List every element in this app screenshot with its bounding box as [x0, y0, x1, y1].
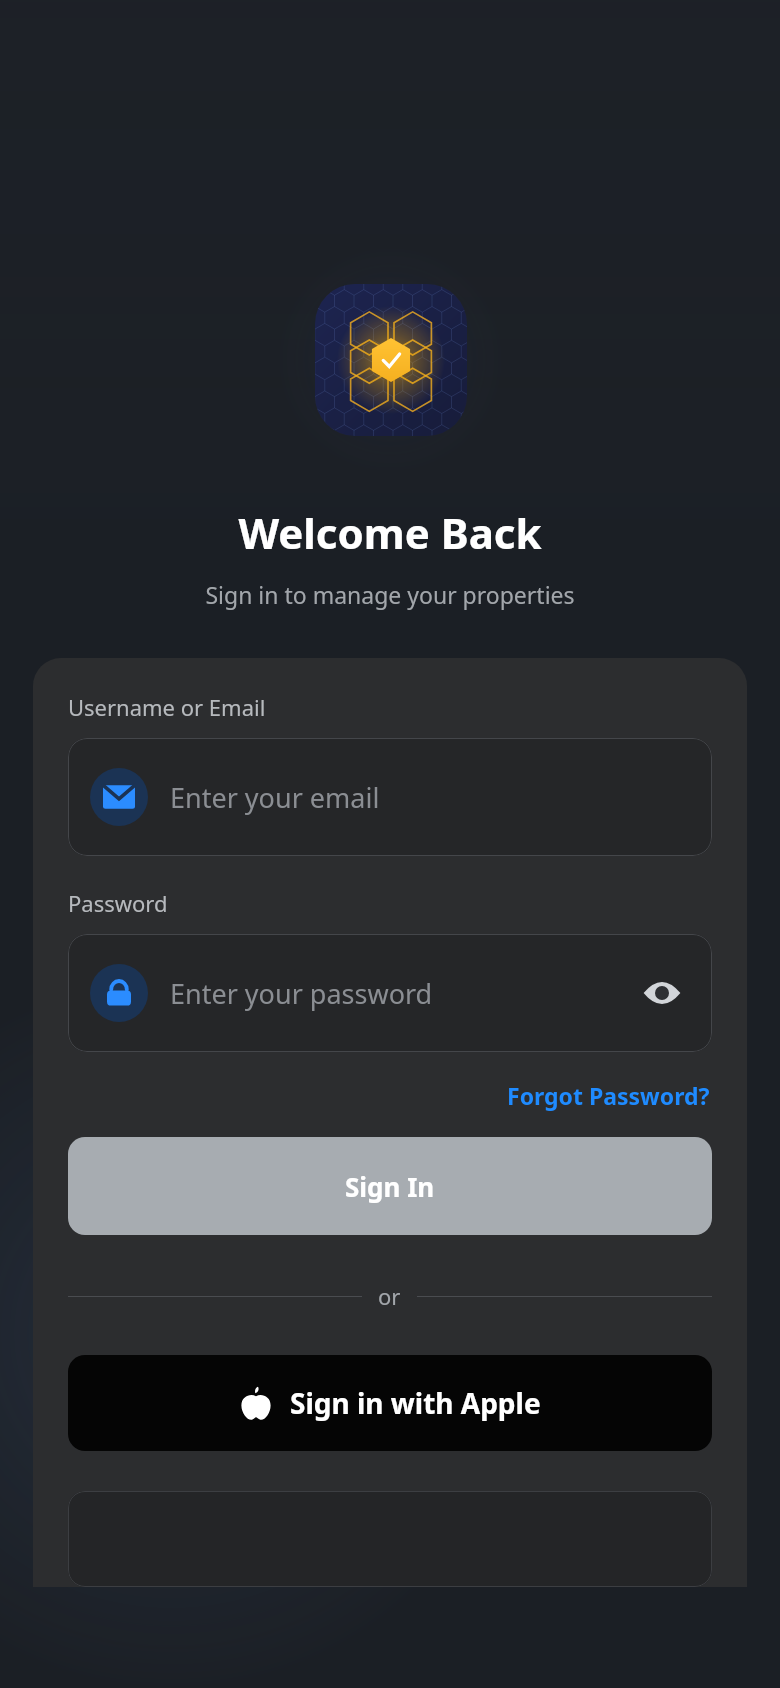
- button[interactable]: Show password: [634, 965, 690, 1021]
- staticText: Sign In: [345, 1169, 435, 1204]
- staticText: Username or Email: [68, 692, 266, 722]
- button[interactable]: Enter your email: [68, 738, 712, 856]
- button[interactable]: Enter your password: [68, 934, 712, 1052]
- button[interactable]: Sign in with Apple: [68, 1355, 712, 1451]
- staticText: Sign in with Apple: [290, 1384, 541, 1422]
- button[interactable]: [68, 1491, 712, 1587]
- button[interactable]: Sign In: [68, 1137, 712, 1235]
- staticText: Forgot Password?: [507, 1080, 710, 1111]
- staticText: Welcome Back: [238, 504, 542, 561]
- button[interactable]: Forgot Password?: [505, 1074, 712, 1117]
- staticText: Enter your password: [170, 975, 634, 1012]
- staticText: Password: [68, 888, 168, 918]
- staticText: Enter your email: [170, 779, 690, 816]
- staticText: or: [378, 1281, 401, 1311]
- staticText: Sign in to manage your properties: [205, 579, 575, 610]
